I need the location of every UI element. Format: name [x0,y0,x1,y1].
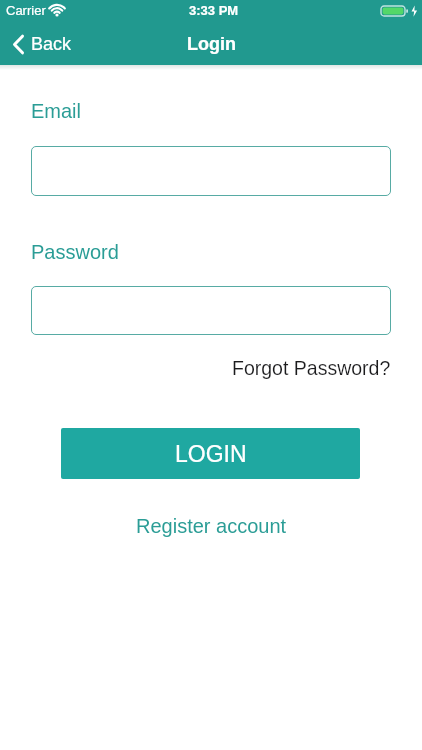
button[interactable] [31,286,391,335]
staticText: Email [31,100,82,122]
staticText: Register account [136,515,287,537]
staticText: Login [187,34,236,54]
button[interactable]: Register account [136,515,287,537]
button[interactable]: LOGIN [61,428,360,479]
staticText: Carrier [6,3,46,18]
button[interactable]: Back [6,30,78,60]
staticText: 3:33 PM [189,3,239,18]
staticText: Forgot Password? [232,357,391,379]
staticText: Password [31,241,119,263]
button[interactable]: Forgot Password? [232,357,391,379]
button[interactable] [31,146,391,196]
staticText: LOGIN [175,441,247,467]
staticText: Back [31,34,72,54]
